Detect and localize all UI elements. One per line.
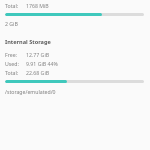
staticText: Used: xyxy=(5,60,19,67)
staticText: 22.68 GiB xyxy=(26,69,50,76)
staticText: 12.77 GiB xyxy=(26,51,50,58)
button[interactable]: Total: xyxy=(5,2,144,9)
staticText: Total: xyxy=(5,2,19,9)
staticText: 1768 MiB xyxy=(26,2,49,9)
button[interactable]: /storage/emulated/0 xyxy=(5,88,56,95)
button[interactable]: Internal Storage xyxy=(5,38,51,46)
button[interactable]: Free: xyxy=(5,51,144,58)
staticText: 2 GiB xyxy=(5,20,18,27)
staticText: 9.91 GiB 44% xyxy=(26,60,58,67)
button[interactable]: Used: xyxy=(5,60,144,67)
button[interactable]: Total: xyxy=(5,69,144,76)
staticText: Free: xyxy=(5,51,17,58)
staticText: Total: xyxy=(5,69,19,76)
